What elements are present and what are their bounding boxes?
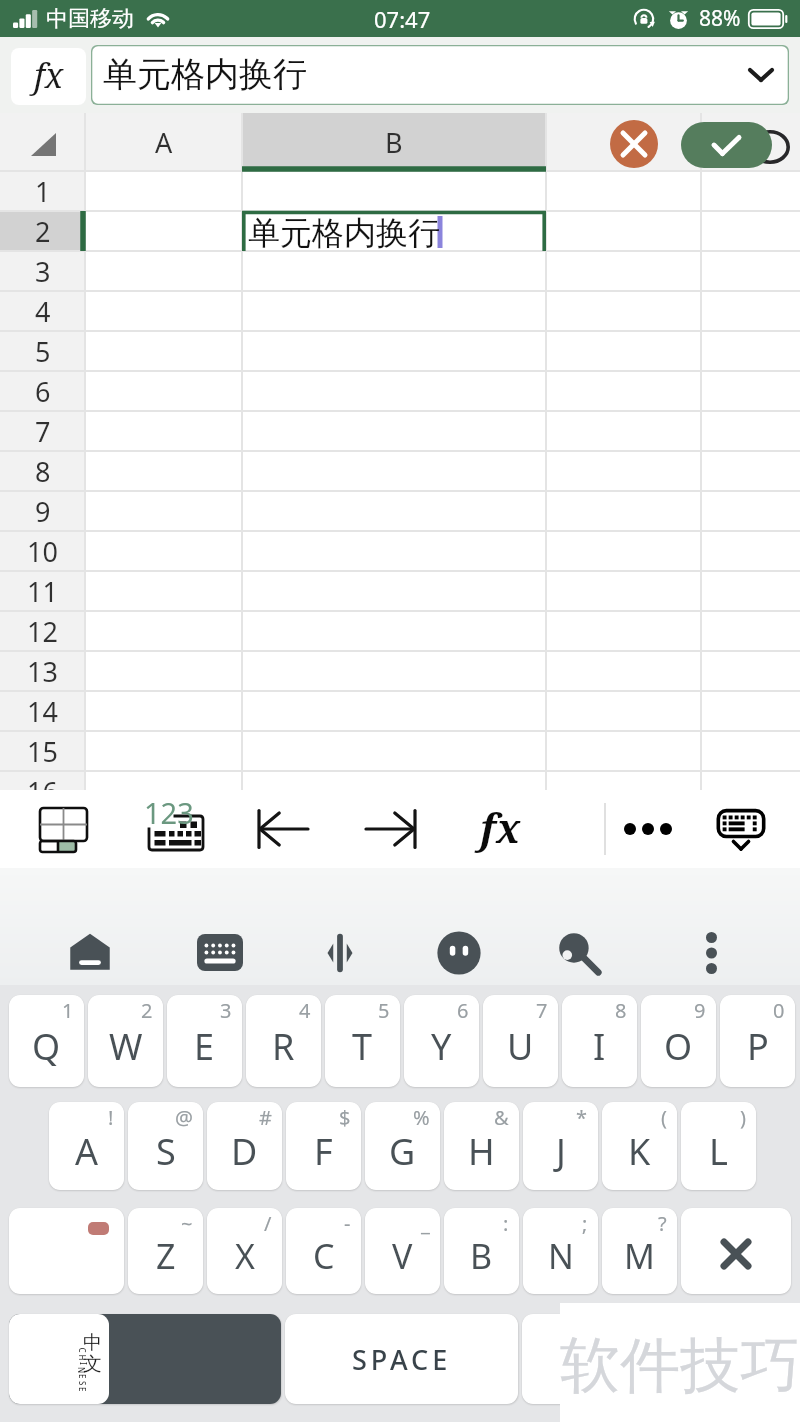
staticText: c (585, 1339, 596, 1366)
staticText: $ (339, 1104, 351, 1131)
button[interactable]: % (365, 1102, 440, 1190)
button[interactable]: ? (602, 1208, 677, 1294)
staticText: C (313, 1233, 335, 1279)
staticText: 10 (27, 533, 58, 570)
button[interactable]: 2 (88, 995, 163, 1087)
button[interactable]: SPACE (285, 1314, 518, 1404)
staticText: A (155, 124, 173, 161)
staticText: G (389, 1127, 416, 1176)
button[interactable]: 9 (641, 995, 716, 1087)
staticText: 88% (699, 4, 741, 33)
button[interactable]: Insert function (461, 790, 539, 868)
staticText: S (77, 1381, 88, 1386)
staticText: H (76, 1354, 87, 1360)
staticText: 13 (27, 653, 58, 690)
staticText: N (76, 1367, 87, 1374)
button[interactable]: ~ (128, 1208, 203, 1294)
button[interactable]: Home (59, 922, 121, 984)
button[interactable]: Previous cell (244, 790, 322, 868)
staticText: I (78, 1362, 89, 1365)
button[interactable]: Comma (522, 1314, 652, 1404)
staticText: 0 (773, 997, 785, 1024)
button[interactable]: Shift (9, 1208, 124, 1294)
button[interactable]: Next cell (352, 790, 430, 868)
button[interactable]: Hide keyboard (702, 790, 780, 868)
staticText: E (194, 1022, 215, 1071)
button[interactable]: Numeric keyboard (136, 790, 214, 868)
button[interactable]: ; (523, 1208, 598, 1294)
button[interactable]: $ (286, 1102, 361, 1190)
staticText: 单元格内换行 (248, 213, 440, 253)
button[interactable]: 3 (167, 995, 242, 1087)
staticText: ~ (181, 1210, 193, 1237)
staticText: SPACE (352, 1341, 452, 1378)
staticText: , (586, 1349, 595, 1390)
button[interactable]: 7 (483, 995, 558, 1087)
staticText: ( (661, 1104, 667, 1131)
button[interactable]: More options (680, 922, 742, 984)
staticText: 9 (694, 997, 706, 1024)
button[interactable]: Cancel (610, 120, 658, 168)
button[interactable]: 1 (9, 995, 84, 1087)
staticText: 16 (27, 773, 58, 810)
button[interactable]: - (286, 1208, 361, 1294)
staticText: 6 (457, 997, 469, 1024)
button[interactable]: 单元格内换行 (91, 45, 789, 105)
button[interactable]: 0 (720, 995, 795, 1087)
staticText: 4 (299, 997, 311, 1024)
button[interactable]: Chinese input (9, 1314, 109, 1404)
button[interactable]: 5 (325, 995, 400, 1087)
staticText: / (264, 1210, 272, 1237)
staticText: Q (32, 1022, 61, 1071)
button[interactable]: Cell format (25, 790, 103, 868)
button[interactable]: & (444, 1102, 519, 1190)
button[interactable]: ! (49, 1102, 124, 1190)
button[interactable]: # (207, 1102, 282, 1190)
staticText: D (231, 1127, 258, 1176)
staticText: 1 (62, 997, 74, 1024)
staticText: 14 (27, 693, 58, 730)
staticText: S (156, 1127, 176, 1176)
staticText: P (747, 1022, 769, 1071)
staticText: _ (421, 1210, 430, 1237)
staticText: 6 (35, 373, 51, 410)
button[interactable]: Insert function (11, 48, 86, 105)
staticText: E (77, 1374, 88, 1379)
staticText: A (75, 1127, 99, 1176)
button[interactable]: Keyboard layout (189, 921, 251, 983)
staticText: R (272, 1022, 295, 1071)
button[interactable]: @ (128, 1102, 203, 1190)
staticText: 中国移动 (46, 5, 134, 33)
staticText: B (385, 124, 403, 161)
button[interactable]: 8 (562, 995, 637, 1087)
staticText: 单元格内换行 (103, 53, 307, 96)
button[interactable]: _ (365, 1208, 440, 1294)
button[interactable]: More (609, 790, 687, 868)
staticText: 2 (141, 997, 153, 1024)
staticText: 2 (35, 213, 51, 250)
button[interactable]: Search (548, 922, 610, 984)
button[interactable]: 6 (404, 995, 479, 1087)
staticText: F (314, 1127, 333, 1176)
button[interactable]: Backspace (681, 1208, 791, 1294)
button[interactable]: Expand formula bar (733, 47, 789, 103)
button[interactable]: ( (602, 1102, 677, 1190)
button[interactable]: Period (659, 1314, 791, 1404)
button[interactable]: Confirm (681, 122, 772, 168)
staticText: X (235, 1233, 255, 1279)
staticText: 11 (27, 573, 58, 610)
button[interactable]: One hand mode (309, 922, 371, 984)
button[interactable]: Emoji (428, 922, 490, 984)
staticText: 123 (144, 793, 194, 832)
button[interactable]: 4 (246, 995, 321, 1087)
button[interactable]: Switch keyboard (9, 1314, 281, 1404)
staticText: : (503, 1210, 509, 1237)
staticText: U (507, 1022, 534, 1071)
staticText: 8 (35, 453, 51, 490)
staticText: N (548, 1233, 574, 1279)
button[interactable]: / (207, 1208, 282, 1294)
button[interactable]: ) (681, 1102, 756, 1190)
staticText: fx (480, 800, 521, 854)
button[interactable]: * (523, 1102, 598, 1190)
button[interactable]: : (444, 1208, 519, 1294)
